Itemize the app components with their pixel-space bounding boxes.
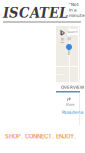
staticText: in a xyxy=(69,8,77,13)
button[interactable]: Share xyxy=(58,96,76,107)
staticText: OVERVIEW xyxy=(61,85,84,90)
button[interactable]: Pasadena xyxy=(62,110,84,115)
staticText: Pasadena xyxy=(62,110,84,115)
staticText: SHOP. CONNECT. ENJOY. xyxy=(5,133,76,140)
staticText: "Not xyxy=(69,2,79,7)
staticText: minute xyxy=(69,13,85,18)
staticText: Search xyxy=(67,30,78,34)
staticText: ISCATEL xyxy=(3,4,68,21)
button[interactable]: OVERVIEW xyxy=(56,83,80,93)
staticText: Share xyxy=(65,102,74,106)
